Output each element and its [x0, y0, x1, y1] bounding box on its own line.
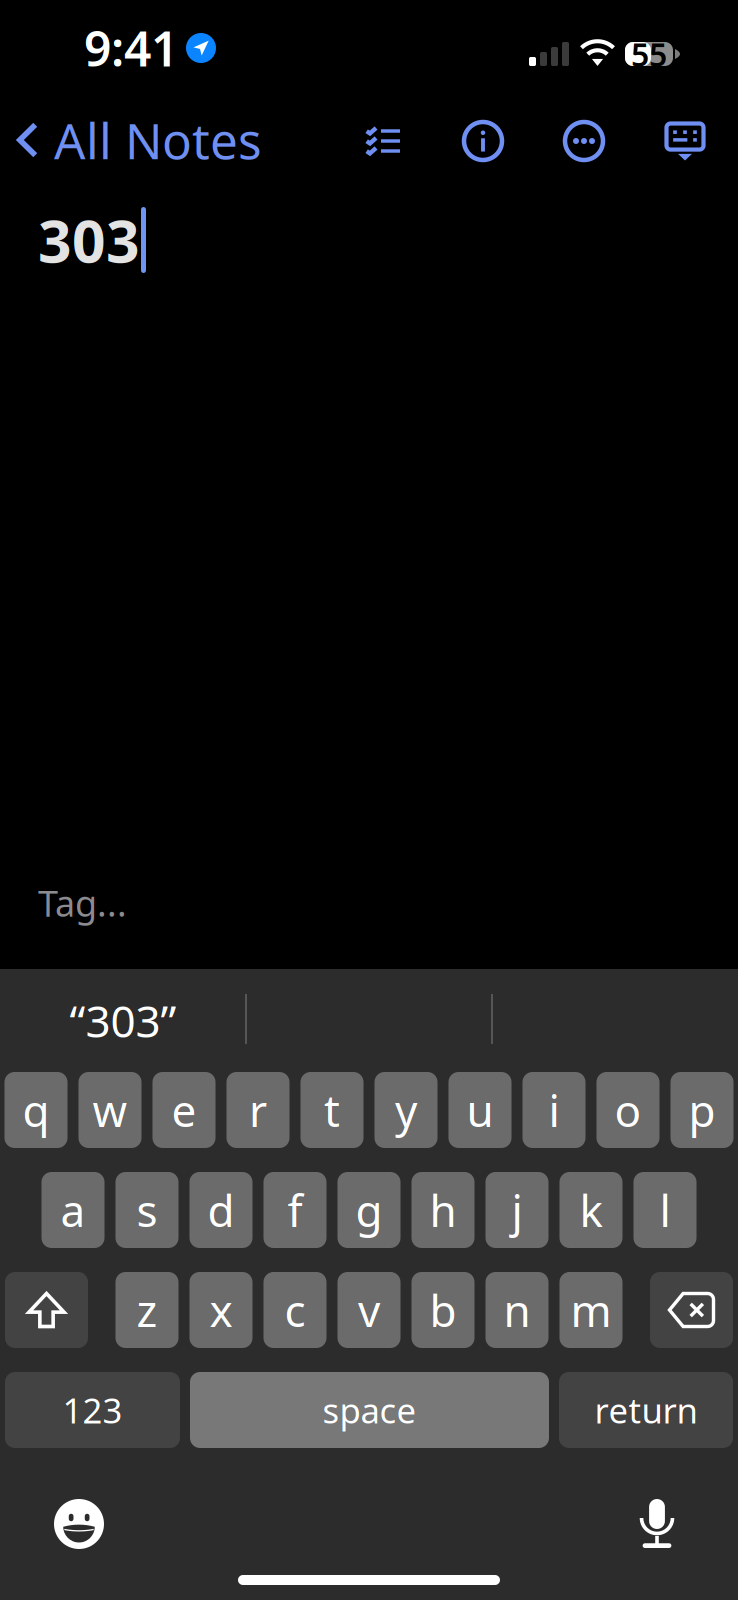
button[interactable]: p: [670, 1072, 733, 1148]
staticText: o: [614, 1081, 641, 1139]
staticText: k: [579, 1181, 602, 1239]
staticText: 9:41: [84, 16, 178, 80]
button[interactable]: “303”: [0, 969, 246, 1072]
button[interactable]: More: [553, 110, 615, 172]
button[interactable]: return: [559, 1372, 733, 1448]
staticText: z: [136, 1281, 157, 1339]
staticText: q: [22, 1081, 49, 1139]
staticText: n: [503, 1281, 530, 1339]
staticText: d: [207, 1181, 234, 1239]
staticText: t: [324, 1081, 340, 1139]
staticText: l: [659, 1181, 670, 1239]
button[interactable]: q: [4, 1072, 67, 1148]
button[interactable]: Delete: [650, 1272, 733, 1348]
button[interactable]: g: [337, 1172, 400, 1248]
staticText: v: [358, 1281, 380, 1339]
staticText: m: [570, 1281, 611, 1339]
button[interactable]: f: [263, 1172, 326, 1248]
button[interactable]: d: [189, 1172, 252, 1248]
button[interactable]: s: [115, 1172, 178, 1248]
staticText: All Notes: [54, 107, 262, 173]
button[interactable]: e: [152, 1072, 215, 1148]
staticText: w: [92, 1081, 127, 1139]
staticText: c: [284, 1281, 305, 1339]
staticText: 123: [62, 1387, 122, 1433]
staticText: f: [287, 1181, 302, 1239]
button[interactable]: Emoji keyboard: [42, 1487, 116, 1561]
button[interactable]: y: [374, 1072, 437, 1148]
staticText: Tag...: [38, 879, 127, 927]
staticText: p: [688, 1081, 715, 1139]
staticText: i: [548, 1081, 559, 1139]
button[interactable]: u: [448, 1072, 511, 1148]
button[interactable]: b: [411, 1272, 474, 1348]
staticText: y: [395, 1081, 417, 1139]
staticText: j: [511, 1181, 522, 1239]
staticText: b: [429, 1281, 456, 1339]
button[interactable]: i: [522, 1072, 585, 1148]
button[interactable]: w: [78, 1072, 141, 1148]
staticText: 55: [631, 33, 667, 75]
button[interactable]: v: [337, 1272, 400, 1348]
button[interactable]: All Notes: [0, 104, 297, 176]
staticText: 303: [38, 201, 140, 279]
staticText: h: [429, 1181, 456, 1239]
button[interactable]: t: [300, 1072, 363, 1148]
button[interactable]: z: [115, 1272, 178, 1348]
button[interactable]: Checklist: [352, 110, 414, 172]
staticText: return: [594, 1387, 697, 1433]
staticText: r: [249, 1081, 267, 1139]
button[interactable]: r: [226, 1072, 289, 1148]
button[interactable]: Dictate: [620, 1487, 694, 1561]
button[interactable]: o: [596, 1072, 659, 1148]
staticText: e: [171, 1081, 196, 1139]
button[interactable]: Shift: [5, 1272, 88, 1348]
button[interactable]: space: [190, 1372, 549, 1448]
button[interactable]: c: [263, 1272, 326, 1348]
staticText: “303”: [69, 991, 176, 1050]
staticText: a: [60, 1181, 85, 1239]
button[interactable]: Info: [452, 110, 514, 172]
staticText: x: [209, 1281, 232, 1339]
staticText: space: [322, 1387, 416, 1433]
button[interactable]: n: [485, 1272, 548, 1348]
button[interactable]: a: [41, 1172, 104, 1248]
button[interactable]: 123: [5, 1372, 180, 1448]
button[interactable]: j: [485, 1172, 548, 1248]
button[interactable]: k: [559, 1172, 622, 1248]
staticText: s: [136, 1181, 157, 1239]
button[interactable]: m: [559, 1272, 622, 1348]
staticText: u: [466, 1081, 493, 1139]
button[interactable]: x: [189, 1272, 252, 1348]
button[interactable]: l: [633, 1172, 696, 1248]
button[interactable]: h: [411, 1172, 474, 1248]
staticText: g: [355, 1181, 382, 1239]
button[interactable]: Hide Keyboard: [654, 111, 716, 173]
